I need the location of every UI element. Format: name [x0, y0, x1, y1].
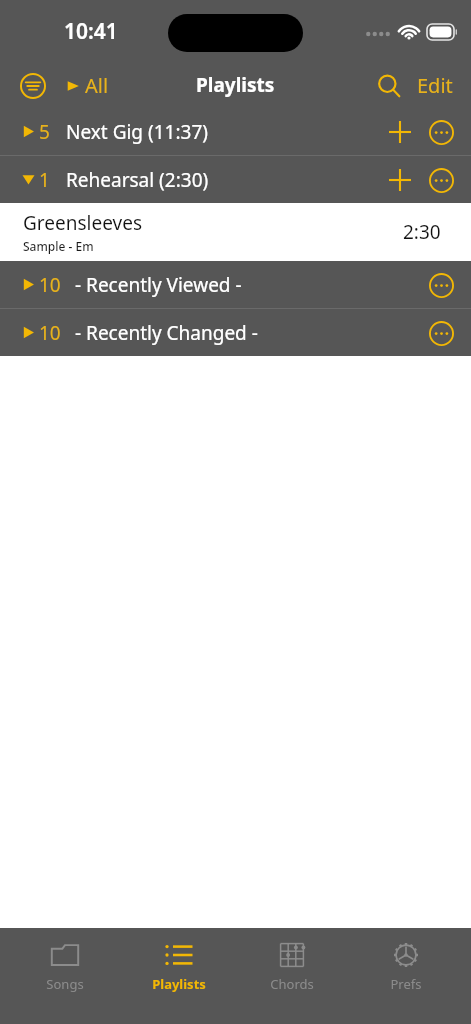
staticText: - Recently Changed - — [75, 320, 258, 346]
button[interactable]: Chords — [244, 936, 340, 997]
staticText: 2:30 — [403, 219, 441, 245]
button[interactable]: More options for Next Gig (11:37) — [421, 112, 461, 152]
button[interactable]: Greensleeves — [0, 203, 471, 261]
button[interactable]: Playlists — [131, 936, 227, 997]
staticText: Playlists — [152, 975, 206, 993]
staticText: Edit — [417, 72, 453, 99]
staticText: Rehearsal (2:30) — [66, 167, 209, 193]
button[interactable]: Sort options — [16, 69, 50, 103]
staticText: 10 — [39, 272, 61, 298]
button[interactable]: More options for - Recently Viewed - — [421, 265, 461, 305]
staticText: Next Gig (11:37) — [66, 119, 208, 145]
button[interactable]: Prefs — [358, 936, 454, 997]
button[interactable]: Edit — [413, 66, 457, 105]
staticText: Songs — [46, 975, 84, 993]
staticText: 5 — [39, 119, 50, 145]
button[interactable]: Add to Next Gig (11:37) — [381, 113, 419, 151]
button[interactable]: Songs — [17, 936, 113, 997]
button[interactable]: 10 — [0, 309, 471, 356]
button[interactable]: 1 — [0, 156, 471, 203]
staticText: 10:41 — [64, 17, 118, 46]
staticText: Playlists — [196, 72, 275, 98]
staticText: All — [85, 72, 109, 99]
button[interactable]: 10 — [0, 261, 471, 308]
button[interactable]: More options for Rehearsal (2:30) — [421, 160, 461, 200]
button[interactable]: 5 — [0, 108, 471, 155]
button[interactable]: All — [64, 68, 111, 103]
staticText: Prefs — [390, 975, 422, 993]
button[interactable]: More options for - Recently Changed - — [421, 313, 461, 353]
staticText: - Recently Viewed - — [75, 272, 242, 298]
staticText: 1 — [39, 167, 50, 193]
staticText: Greensleeves — [23, 210, 142, 236]
button[interactable]: Add to Rehearsal (2:30) — [381, 161, 419, 199]
staticText: Chords — [270, 975, 314, 993]
staticText: Sample - Em — [23, 238, 94, 254]
button[interactable]: Search — [371, 68, 407, 104]
staticText: 10 — [39, 320, 61, 346]
